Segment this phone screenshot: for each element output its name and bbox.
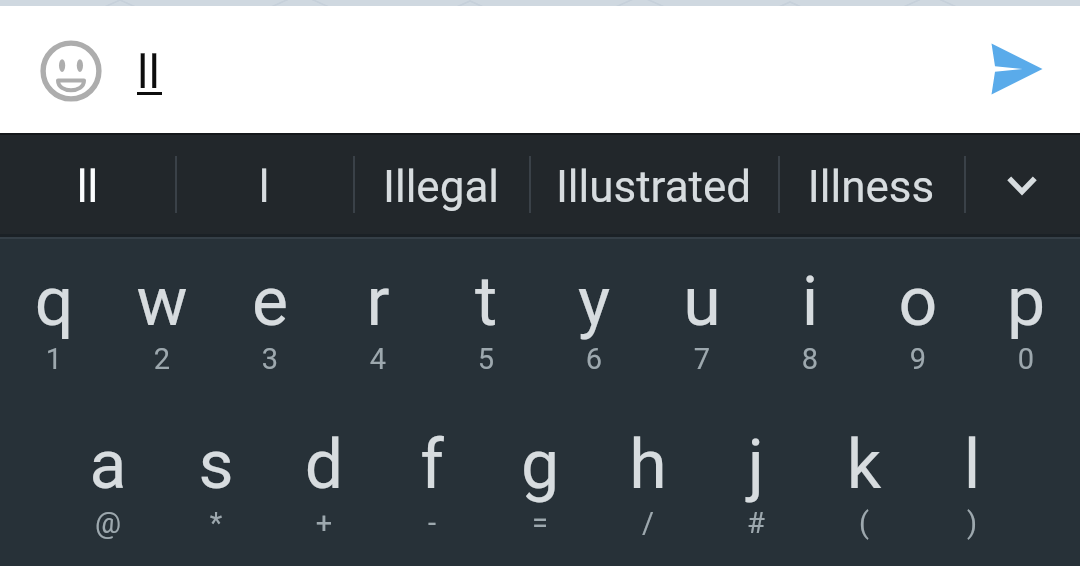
staticText: 0 xyxy=(972,342,1080,376)
staticText: r xyxy=(324,262,432,342)
staticText: + xyxy=(270,506,378,540)
button[interactable]: a xyxy=(54,399,162,562)
button[interactable]: y xyxy=(540,236,648,399)
button[interactable]: g xyxy=(486,399,594,562)
staticText: j xyxy=(702,425,810,505)
staticText: p xyxy=(972,262,1080,342)
button[interactable]: l xyxy=(918,399,1026,562)
staticText: ( xyxy=(810,506,918,540)
button[interactable]: Illustrated xyxy=(529,133,778,236)
button[interactable]: i xyxy=(756,236,864,399)
staticText: k xyxy=(810,425,918,505)
button[interactable]: l xyxy=(175,133,353,236)
staticText: - xyxy=(378,506,486,540)
staticText: g xyxy=(486,425,594,505)
staticText: i xyxy=(756,262,864,342)
button[interactable]: Illness xyxy=(778,133,964,236)
staticText: u xyxy=(648,262,756,342)
staticText: ll xyxy=(137,44,160,99)
staticText: Illness xyxy=(778,161,964,213)
staticText: t xyxy=(432,262,540,342)
button[interactable]: e xyxy=(216,236,324,399)
staticText: Illustrated xyxy=(529,161,778,213)
staticText: 6 xyxy=(540,342,648,376)
staticText: q xyxy=(0,262,108,342)
button[interactable]: Illegal xyxy=(353,133,529,236)
button[interactable]: k xyxy=(810,399,918,562)
button[interactable]: h xyxy=(594,399,702,562)
staticText: 5 xyxy=(432,342,540,376)
staticText: f xyxy=(378,425,486,505)
button[interactable]: r xyxy=(324,236,432,399)
staticText: = xyxy=(486,506,594,540)
staticText: ll xyxy=(0,161,175,213)
button[interactable]: ll xyxy=(130,6,200,133)
staticText: d xyxy=(270,425,378,505)
button[interactable]: o xyxy=(864,236,972,399)
button[interactable]: t xyxy=(432,236,540,399)
staticText: e xyxy=(216,262,324,342)
staticText: a xyxy=(54,425,162,505)
staticText: @ xyxy=(54,506,162,540)
staticText: * xyxy=(162,506,270,540)
staticText: o xyxy=(864,262,972,342)
staticText: w xyxy=(108,262,216,342)
staticText: 4 xyxy=(324,342,432,376)
staticText: h xyxy=(594,425,702,505)
staticText: 9 xyxy=(864,342,972,376)
button[interactable]: w xyxy=(108,236,216,399)
staticText: 8 xyxy=(756,342,864,376)
staticText: ) xyxy=(918,506,1026,540)
button[interactable]: Emoji xyxy=(31,31,111,111)
button[interactable]: p xyxy=(972,236,1080,399)
staticText: s xyxy=(162,425,270,505)
button[interactable]: d xyxy=(270,399,378,562)
staticText: 3 xyxy=(216,342,324,376)
staticText: / xyxy=(594,506,702,540)
staticText: y xyxy=(540,262,648,342)
staticText: l xyxy=(918,425,1026,505)
button[interactable]: u xyxy=(648,236,756,399)
staticText: # xyxy=(702,506,810,540)
button[interactable]: s xyxy=(162,399,270,562)
button[interactable]: More suggestions xyxy=(964,133,1080,236)
button[interactable]: q xyxy=(0,236,108,399)
staticText: 7 xyxy=(648,342,756,376)
button[interactable]: j xyxy=(702,399,810,562)
button[interactable]: ll xyxy=(0,133,175,236)
staticText: 2 xyxy=(108,342,216,376)
staticText: Illegal xyxy=(353,161,529,213)
staticText: 1 xyxy=(0,342,108,376)
button[interactable]: f xyxy=(378,399,486,562)
button[interactable]: Send xyxy=(975,27,1059,111)
staticText: l xyxy=(175,161,353,213)
